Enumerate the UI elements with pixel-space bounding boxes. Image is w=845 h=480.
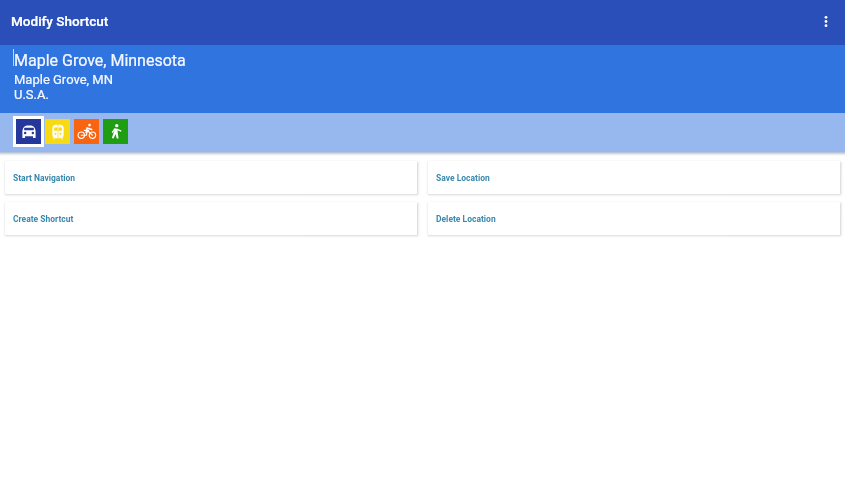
button[interactable]: More options xyxy=(805,3,845,43)
staticText: Create Shortcut xyxy=(13,214,74,224)
button[interactable]: Delete Location xyxy=(428,202,840,235)
button[interactable]: Start Navigation xyxy=(5,161,417,194)
staticText: Modify Shortcut xyxy=(11,13,109,29)
staticText: U.S.A. xyxy=(14,87,49,102)
button[interactable]: Create Shortcut xyxy=(5,202,417,235)
staticText: Maple Grove, Minnesota xyxy=(14,51,186,70)
button[interactable]: Transit xyxy=(45,119,70,144)
staticText: Delete Location xyxy=(436,214,496,224)
staticText: Start Navigation xyxy=(13,173,76,183)
button[interactable]: Bicycling xyxy=(74,119,99,144)
staticText: Maple Grove, MN xyxy=(14,72,113,87)
button[interactable]: Walking xyxy=(103,119,128,144)
button[interactable]: Driving xyxy=(16,119,41,144)
button[interactable]: Save Location xyxy=(428,161,840,194)
staticText: Save Location xyxy=(436,173,490,183)
